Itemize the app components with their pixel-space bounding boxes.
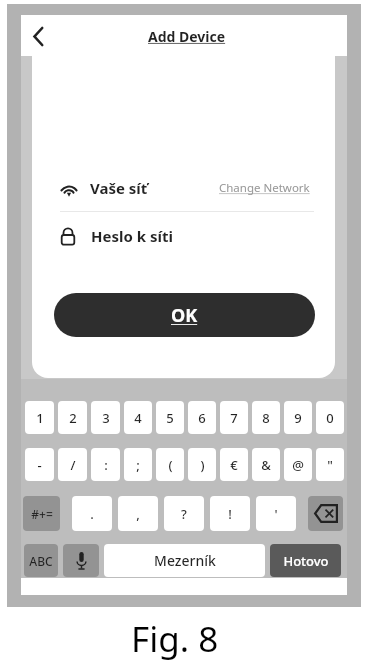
button[interactable]: Vaše síť <box>32 166 335 210</box>
staticText: Vaše síť <box>90 178 148 198</box>
button[interactable]: , <box>118 496 158 531</box>
staticText: - <box>37 456 42 474</box>
staticText: / <box>70 456 76 474</box>
button[interactable]: 9 <box>284 401 312 434</box>
staticText: 8 <box>262 409 270 427</box>
button[interactable]: ' <box>256 496 296 531</box>
staticText: OK <box>171 303 198 328</box>
staticText: ' <box>274 505 278 523</box>
button[interactable]: 7 <box>220 401 248 434</box>
staticText: , <box>136 505 140 523</box>
button[interactable]: @ <box>284 448 312 481</box>
button[interactable]: 6 <box>188 401 216 434</box>
staticText: 6 <box>198 409 206 427</box>
staticText: @ <box>292 456 304 474</box>
button[interactable]: 0 <box>316 401 344 434</box>
staticText: . <box>90 505 94 523</box>
button[interactable]: & <box>252 448 280 481</box>
staticText: 4 <box>134 409 142 427</box>
staticText: 2 <box>69 409 77 427</box>
button[interactable]: Hotovo <box>270 544 341 577</box>
staticText: 3 <box>102 409 110 427</box>
button[interactable]: 2 <box>58 401 87 434</box>
staticText: Fig. 8 <box>131 615 219 663</box>
staticText: 7 <box>230 409 238 427</box>
button[interactable]: 4 <box>124 401 152 434</box>
button[interactable]: Backspace <box>308 496 343 531</box>
button[interactable]: ? <box>164 496 204 531</box>
button[interactable]: - <box>25 448 54 481</box>
staticText: 0 <box>326 409 334 427</box>
staticText: ( <box>168 456 173 474</box>
button[interactable]: 1 <box>25 401 54 434</box>
staticText: #+= <box>31 506 53 522</box>
button[interactable]: ABC <box>24 544 58 577</box>
button[interactable]: #+= <box>23 496 60 531</box>
staticText: Add Device <box>148 27 226 46</box>
staticText: 1 <box>36 409 44 427</box>
button[interactable]: 8 <box>252 401 280 434</box>
staticText: ) <box>200 456 205 474</box>
button[interactable]: Voice input <box>63 544 99 577</box>
staticText: : <box>104 456 108 474</box>
staticText: ? <box>181 505 187 523</box>
button[interactable]: Back <box>24 22 52 50</box>
button[interactable]: / <box>58 448 87 481</box>
button[interactable]: ! <box>210 496 250 531</box>
staticText: ABC <box>29 553 53 569</box>
button[interactable]: OK <box>54 293 315 337</box>
button[interactable]: € <box>220 448 248 481</box>
staticText: 5 <box>166 409 174 427</box>
button[interactable]: ( <box>156 448 184 481</box>
button[interactable]: Heslo k síti <box>32 214 335 258</box>
button[interactable]: 3 <box>91 401 120 434</box>
button[interactable]: : <box>91 448 120 481</box>
button[interactable]: 5 <box>156 401 184 434</box>
staticText: € <box>230 456 238 474</box>
button[interactable]: ; <box>124 448 152 481</box>
staticText: " <box>327 456 333 474</box>
staticText: & <box>261 456 271 474</box>
staticText: Hotovo <box>283 552 329 570</box>
button[interactable]: ) <box>188 448 216 481</box>
button[interactable]: . <box>72 496 112 531</box>
staticText: Heslo k síti <box>91 226 173 246</box>
staticText: 9 <box>294 409 302 427</box>
button[interactable]: Change Network <box>219 180 310 196</box>
staticText: Mezerník <box>154 551 216 570</box>
staticText: ! <box>228 505 232 523</box>
button[interactable]: " <box>316 448 344 481</box>
staticText: ; <box>136 456 140 474</box>
button[interactable]: Mezerník <box>104 544 265 577</box>
